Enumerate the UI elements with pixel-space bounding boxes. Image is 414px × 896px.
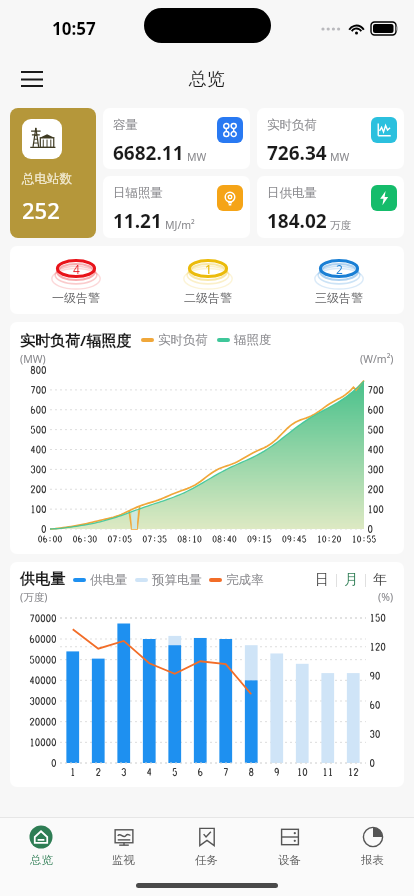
button[interactable]: 监视 bbox=[82, 818, 165, 874]
staticText: 实时负荷 bbox=[267, 117, 317, 133]
staticText: 1 bbox=[205, 261, 212, 277]
staticText: (万度) bbox=[20, 590, 48, 604]
staticText: MW bbox=[330, 150, 350, 164]
staticText: 监视 bbox=[112, 853, 135, 867]
staticText: 10:57 bbox=[52, 17, 96, 40]
button[interactable]: 日 bbox=[308, 571, 336, 589]
staticText: (MW) bbox=[20, 352, 46, 366]
staticText: 二级告警 bbox=[184, 290, 232, 305]
staticText: 实时负荷 bbox=[158, 332, 208, 348]
button[interactable]: 日供电量 bbox=[257, 176, 404, 238]
staticText: 设备 bbox=[278, 853, 301, 867]
staticText: 供电量 bbox=[90, 572, 128, 588]
button[interactable]: 年 bbox=[366, 571, 394, 589]
button[interactable]: 任务 bbox=[165, 818, 248, 874]
button[interactable]: 4 bbox=[10, 246, 142, 314]
staticText: 4 bbox=[73, 261, 80, 277]
staticText: MJ/m² bbox=[165, 218, 195, 232]
staticText: 总电站数 bbox=[22, 171, 72, 187]
button[interactable]: 容量 bbox=[103, 108, 250, 169]
staticText: 日供电量 bbox=[267, 185, 317, 201]
button[interactable]: 设备 bbox=[248, 818, 331, 874]
button[interactable]: Menu bbox=[10, 57, 54, 101]
staticText: 总览 bbox=[189, 68, 225, 91]
staticText: 2 bbox=[336, 261, 343, 277]
staticText: 726.34 bbox=[267, 140, 327, 166]
staticText: 供电量 bbox=[20, 570, 65, 589]
button[interactable]: 月 bbox=[337, 571, 365, 589]
staticText: 6682.11 bbox=[113, 140, 184, 166]
staticText: 预算电量 bbox=[152, 572, 202, 588]
staticText: 日 bbox=[315, 571, 329, 589]
staticText: 万度 bbox=[330, 219, 351, 232]
button[interactable]: 1 bbox=[142, 246, 273, 314]
staticText: 任务 bbox=[195, 853, 218, 867]
staticText: (W/m²) bbox=[360, 352, 394, 366]
staticText: 三级告警 bbox=[315, 290, 363, 305]
staticText: 报表 bbox=[361, 853, 384, 867]
staticText: 184.02 bbox=[267, 208, 327, 234]
staticText: 日辐照量 bbox=[113, 185, 163, 201]
button[interactable]: 日辐照量 bbox=[103, 176, 250, 238]
staticText: 11.21 bbox=[113, 208, 162, 234]
staticText: 容量 bbox=[113, 117, 138, 133]
button[interactable]: 2 bbox=[273, 246, 404, 314]
staticText: 月 bbox=[344, 571, 358, 589]
button[interactable]: 总览 bbox=[0, 818, 82, 874]
staticText: MW bbox=[187, 150, 207, 164]
staticText: 252 bbox=[22, 195, 60, 225]
staticText: (%) bbox=[378, 590, 394, 604]
staticText: 实时负荷/辐照度 bbox=[20, 330, 132, 350]
staticText: 年 bbox=[373, 571, 387, 589]
button[interactable]: 报表 bbox=[331, 818, 414, 874]
button[interactable]: 实时负荷 bbox=[257, 108, 404, 169]
staticText: 完成率 bbox=[226, 572, 264, 588]
staticText: 总览 bbox=[30, 853, 53, 867]
staticText: 一级告警 bbox=[52, 290, 100, 305]
staticText: 辐照度 bbox=[234, 332, 272, 348]
button[interactable]: 总电站数 bbox=[10, 108, 96, 238]
